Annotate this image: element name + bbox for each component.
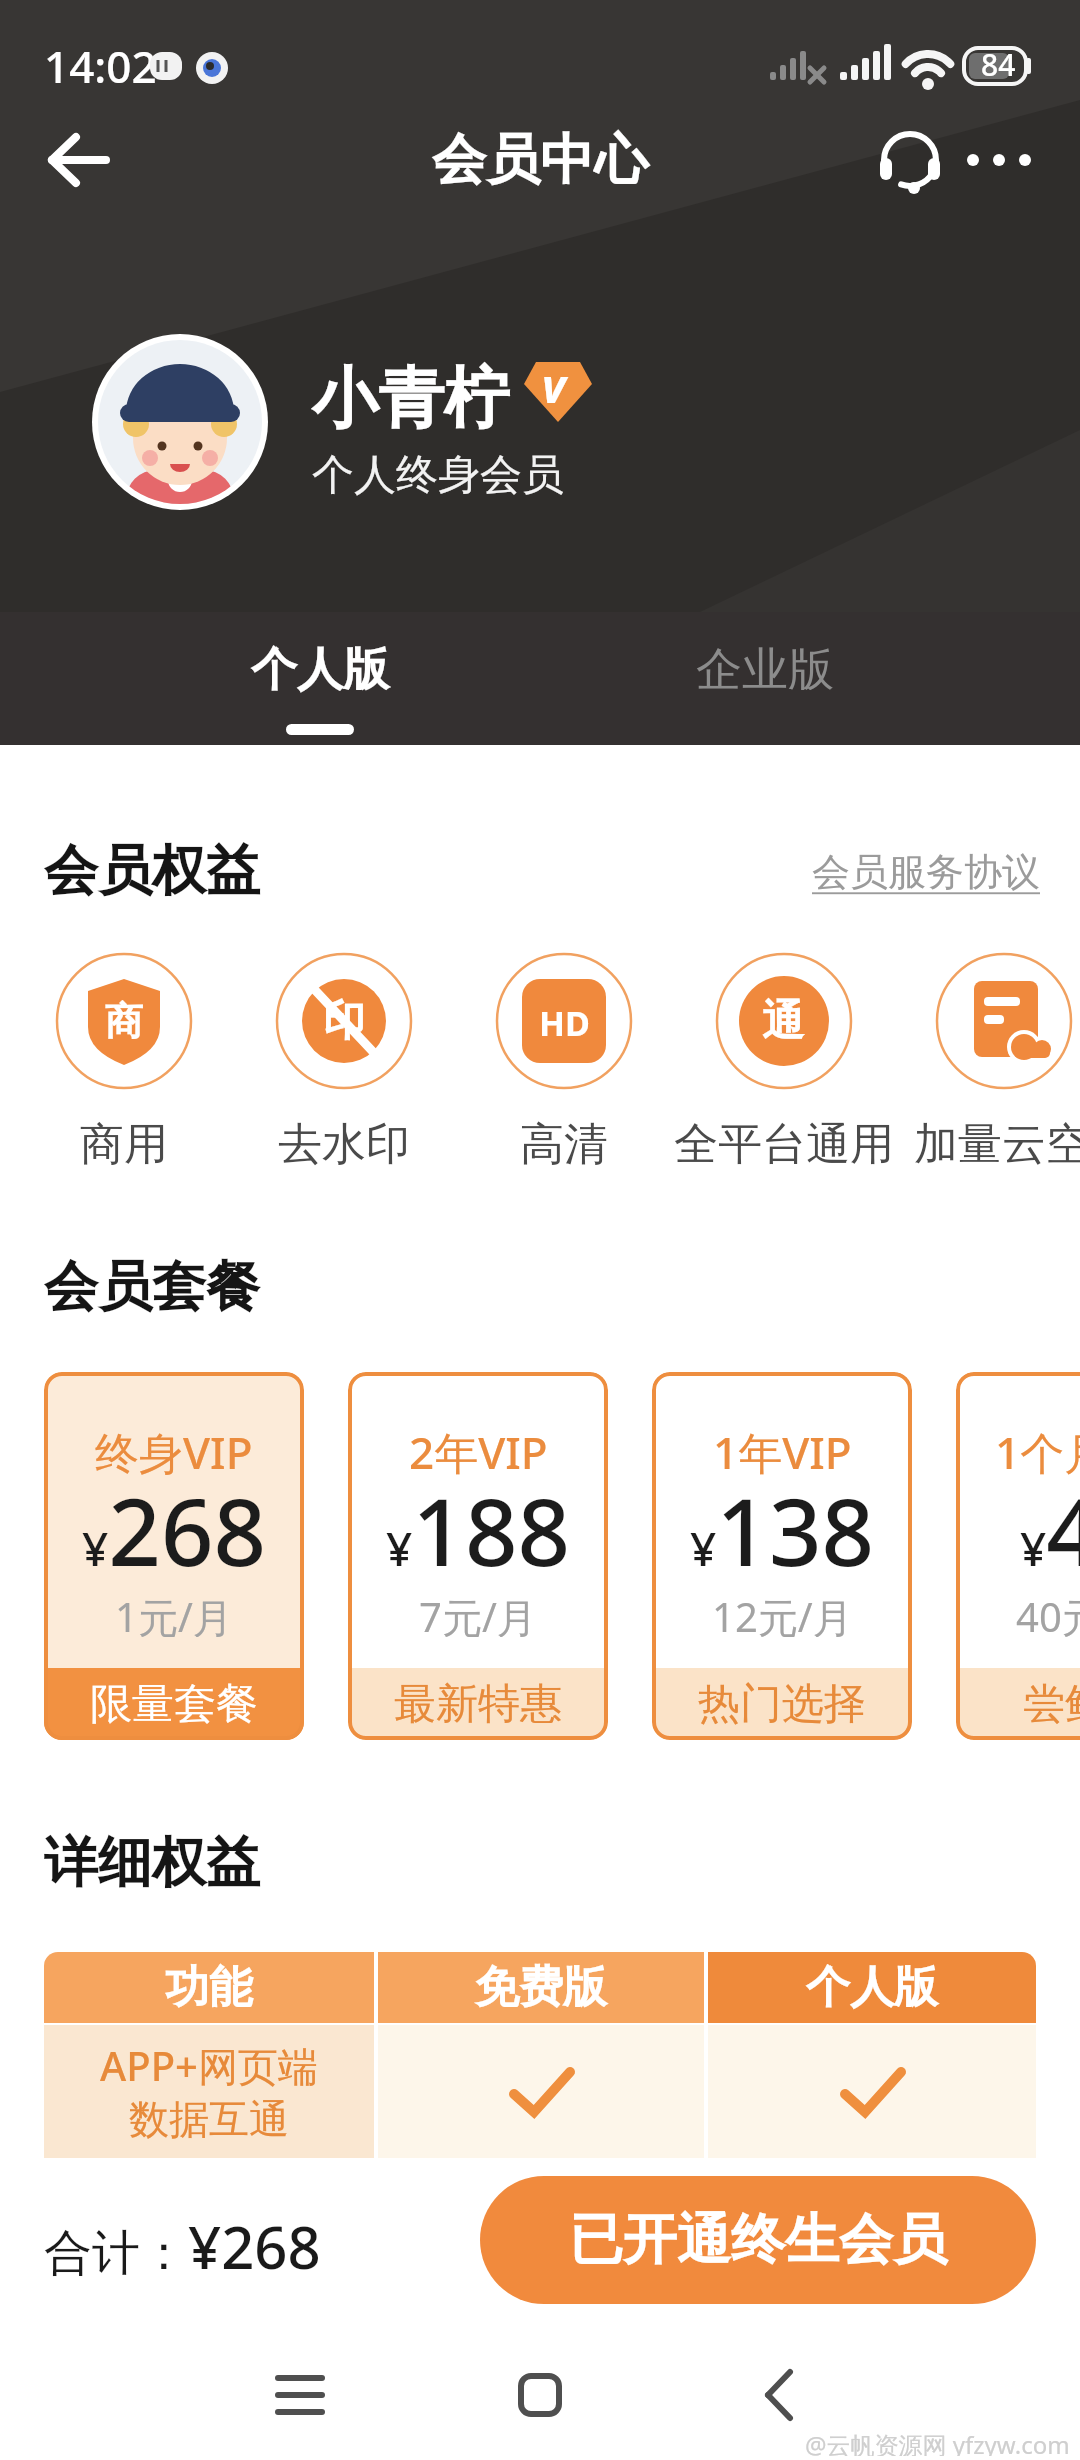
staticText: 小青柠 xyxy=(312,357,510,440)
staticText: 1元/月 xyxy=(115,1589,233,1637)
staticText: ¥138 xyxy=(690,1468,875,1584)
staticText: APP+网页端 数据互通 xyxy=(100,2038,318,2145)
button[interactable]: 通 xyxy=(716,953,852,1089)
button[interactable] xyxy=(510,2365,570,2425)
staticText: 终身VIP xyxy=(95,1422,253,1478)
button[interactable]: 1年VIP xyxy=(652,1372,912,1740)
button[interactable]: 2年VIP xyxy=(348,1372,608,1740)
staticText: ¥40 xyxy=(1020,1468,1080,1584)
staticText: v xyxy=(542,354,566,417)
staticText: 通 xyxy=(762,995,804,1048)
staticText: 1年VIP xyxy=(713,1422,852,1478)
staticText: 14:02 xyxy=(44,36,157,92)
staticText: 免费版 xyxy=(475,1960,607,2015)
button[interactable] xyxy=(750,2365,810,2425)
button[interactable] xyxy=(878,128,942,192)
staticText: 会员中心 xyxy=(432,126,648,194)
staticText: 会员权益 xyxy=(44,837,260,905)
staticText: 2年VIP xyxy=(409,1422,548,1478)
staticText: 个人版 xyxy=(806,1960,938,2015)
staticText: ¥188 xyxy=(386,1468,571,1584)
button[interactable]: 商 xyxy=(56,953,192,1089)
staticText: 热门选择 xyxy=(698,1678,866,1731)
staticText: 印 xyxy=(323,995,365,1048)
button[interactable] xyxy=(936,953,1072,1089)
staticText: 84 xyxy=(981,44,1016,85)
staticText: 合计：¥268 xyxy=(44,2207,321,2286)
staticText: 1个月VIP xyxy=(995,1422,1080,1478)
button[interactable]: 1个月VIP xyxy=(956,1372,1080,1740)
staticText: 高清 xyxy=(520,1117,608,1172)
staticText: 限量套餐 xyxy=(90,1678,258,1731)
staticText: 会员服务协议 xyxy=(812,848,1040,896)
staticText: 详细权益 xyxy=(44,1829,260,1897)
button[interactable]: 已开通终生会员 xyxy=(480,2176,1036,2304)
staticText: 40元/月 xyxy=(1016,1589,1080,1637)
staticText: @云帆资源网 yfzyw.com xyxy=(805,2428,1070,2456)
staticText: 12元/月 xyxy=(712,1589,853,1637)
staticText: ¥268 xyxy=(82,1468,267,1584)
staticText: 个人版 xyxy=(251,641,389,699)
button[interactable] xyxy=(958,130,1048,190)
staticText: 最新特惠 xyxy=(394,1678,562,1731)
button[interactable]: 会员服务协议 xyxy=(790,848,1040,896)
staticText: 全平台通用 xyxy=(674,1117,894,1172)
staticText: 商 xyxy=(105,997,143,1045)
staticText: 已开通终生会员 xyxy=(569,2206,947,2274)
staticText: 尝鲜价 xyxy=(1023,1678,1080,1731)
staticText: 商用 xyxy=(80,1117,168,1172)
staticText: 功能 xyxy=(165,1960,253,2015)
button[interactable] xyxy=(48,130,112,190)
staticText: 企业版 xyxy=(696,641,834,699)
button[interactable] xyxy=(270,2365,330,2425)
button[interactable]: HD xyxy=(496,953,632,1089)
button[interactable]: 企业版 xyxy=(585,632,945,708)
staticText: 去水印 xyxy=(278,1117,410,1172)
staticText: HD xyxy=(539,1000,590,1046)
staticText: 7元/月 xyxy=(419,1589,537,1637)
button[interactable]: 终身VIP xyxy=(44,1372,304,1740)
staticText: 个人终身会员 xyxy=(312,449,564,502)
button[interactable]: 个人版 xyxy=(140,632,500,708)
button[interactable]: 印 xyxy=(276,953,412,1089)
staticText: 会员套餐 xyxy=(44,1253,260,1321)
staticText: 加量云空间 xyxy=(914,1117,1080,1172)
